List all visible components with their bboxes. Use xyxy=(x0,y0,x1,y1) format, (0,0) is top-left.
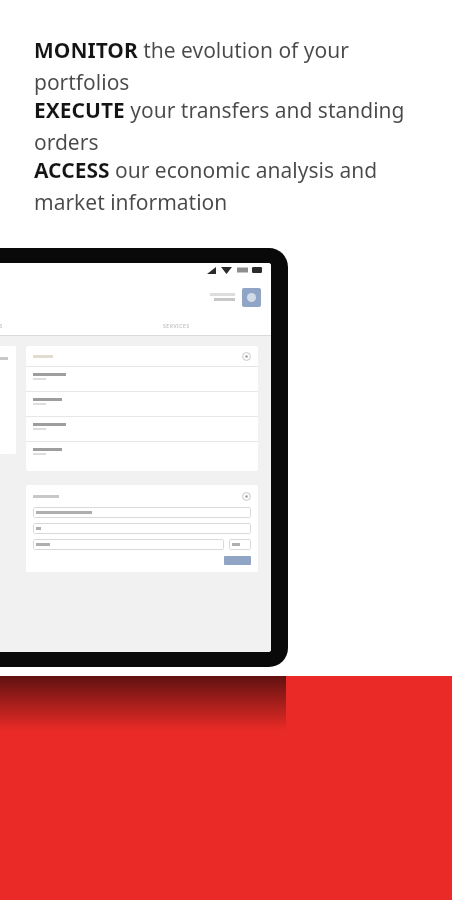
staticText: MONITOR the evolution of your portfolios xyxy=(34,36,436,96)
button[interactable] xyxy=(224,556,251,565)
button[interactable]: More options xyxy=(26,485,258,572)
button[interactable] xyxy=(26,392,258,416)
button[interactable]: More options xyxy=(242,352,251,361)
button[interactable] xyxy=(36,507,248,518)
button[interactable] xyxy=(26,442,258,466)
button[interactable] xyxy=(26,417,258,441)
button[interactable] xyxy=(36,539,221,550)
staticText: SERVICES xyxy=(163,323,190,330)
button[interactable]: More options xyxy=(242,492,251,501)
button[interactable]: More options xyxy=(26,346,258,471)
staticText: ACCESS our economic analysis and market … xyxy=(34,156,436,216)
button[interactable] xyxy=(232,539,248,550)
staticText: EXECUTE your transfers and standing orde… xyxy=(34,96,436,156)
button[interactable] xyxy=(26,367,258,391)
staticText: PAYMENTS xyxy=(0,323,3,330)
button[interactable]: Profile xyxy=(242,288,261,307)
button[interactable] xyxy=(36,523,248,534)
button[interactable] xyxy=(0,346,16,454)
button[interactable]: SERVICES xyxy=(82,318,271,335)
